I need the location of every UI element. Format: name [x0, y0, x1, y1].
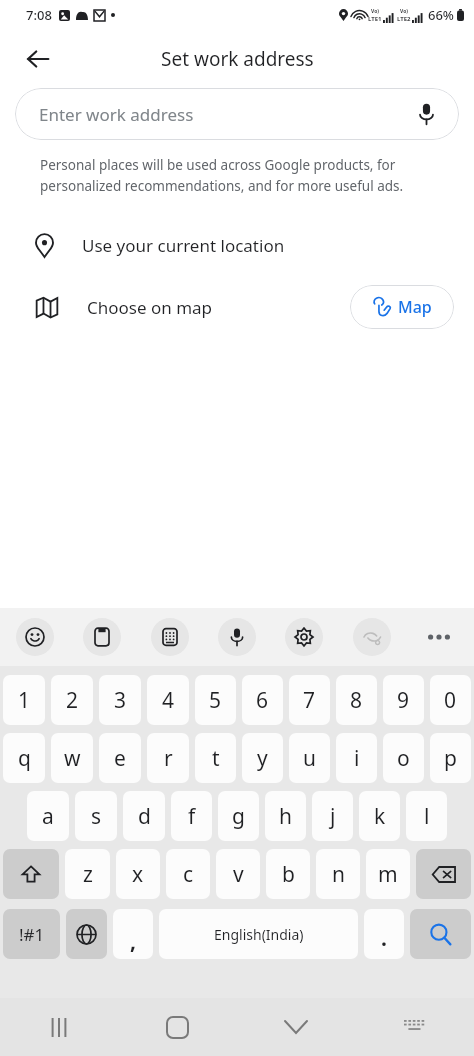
button[interactable]: p — [430, 733, 471, 783]
staticText: Vo) — [400, 8, 408, 15]
button[interactable]: More options — [420, 618, 458, 656]
button[interactable]: m — [366, 849, 410, 899]
staticText: i — [354, 744, 360, 773]
staticText: v — [233, 860, 244, 889]
button[interactable]: Settings — [285, 618, 323, 656]
button[interactable]: f — [171, 791, 212, 841]
staticText: m — [378, 860, 398, 889]
button[interactable]: 6 — [242, 675, 283, 725]
staticText: j — [330, 802, 336, 831]
button[interactable]: Translate — [353, 618, 391, 656]
button[interactable]: z — [65, 849, 110, 899]
staticText: r — [164, 744, 173, 773]
button[interactable]: a — [27, 791, 69, 841]
button[interactable]: e — [99, 733, 141, 783]
staticText: Personal places will be used across Goog… — [40, 156, 396, 174]
button[interactable]: 5 — [195, 675, 236, 725]
button[interactable]: j — [312, 791, 353, 841]
button[interactable]: Keyboard modes — [151, 618, 189, 656]
button[interactable]: !#1 — [3, 909, 60, 959]
staticText: Choose on map — [87, 296, 213, 319]
staticText: 7:08 — [26, 6, 52, 24]
staticText: LTE2 — [397, 15, 411, 23]
button[interactable]: s — [75, 791, 117, 841]
button[interactable]: t — [195, 733, 236, 783]
button[interactable]: i — [336, 733, 377, 783]
button[interactable]: l — [406, 791, 447, 841]
button[interactable]: , — [113, 909, 153, 959]
staticText: f — [188, 802, 196, 831]
staticText: 2 — [66, 686, 79, 715]
button[interactable]: 3 — [99, 675, 141, 725]
button[interactable]: h — [265, 791, 306, 841]
button[interactable]: Shift — [3, 849, 59, 899]
button[interactable]: o — [383, 733, 424, 783]
button[interactable]: 4 — [147, 675, 189, 725]
staticText: e — [114, 744, 126, 773]
staticText: 8 — [350, 686, 363, 715]
button[interactable]: Back — [16, 37, 60, 81]
button[interactable]: Change language — [66, 909, 107, 959]
staticText: w — [64, 744, 81, 773]
button[interactable]: k — [359, 791, 400, 841]
button[interactable]: Switch keyboard — [355, 998, 474, 1056]
staticText: 9 — [397, 686, 410, 715]
button[interactable]: Voice input — [218, 618, 256, 656]
button[interactable]: 7 — [289, 675, 330, 725]
button[interactable]: 2 — [51, 675, 93, 725]
button[interactable]: Enter work address — [15, 88, 459, 140]
button[interactable]: . — [364, 909, 404, 959]
button[interactable]: x — [116, 849, 160, 899]
staticText: 0 — [444, 686, 457, 715]
button[interactable]: w — [51, 733, 93, 783]
button[interactable]: v — [216, 849, 260, 899]
staticText: personalized recommendations, and for mo… — [40, 177, 404, 195]
staticText: Map — [398, 296, 432, 318]
button[interactable]: Clipboard — [83, 618, 121, 656]
staticText: u — [303, 744, 316, 773]
staticText: . — [381, 924, 387, 953]
staticText: d — [138, 802, 151, 831]
staticText: n — [332, 860, 345, 889]
button[interactable]: Recent apps — [0, 998, 118, 1056]
button[interactable]: r — [147, 733, 189, 783]
staticText: Vo) — [371, 8, 379, 15]
staticText: x — [132, 860, 144, 889]
staticText: Set work address — [161, 46, 314, 72]
staticText: p — [444, 744, 457, 773]
button[interactable]: Home — [118, 998, 236, 1056]
button[interactable]: Search — [410, 909, 471, 959]
staticText: q — [18, 744, 31, 773]
button[interactable]: y — [242, 733, 283, 783]
staticText: 6 — [256, 686, 269, 715]
button[interactable]: 9 — [383, 675, 424, 725]
button[interactable]: Voice search — [411, 99, 441, 129]
button[interactable]: g — [218, 791, 259, 841]
button[interactable]: 8 — [336, 675, 377, 725]
staticText: s — [91, 802, 102, 831]
staticText: Enter work address — [39, 103, 411, 126]
button[interactable]: u — [289, 733, 330, 783]
button[interactable]: Emoji — [16, 618, 54, 656]
staticText: c — [183, 860, 194, 889]
staticText: g — [232, 802, 245, 831]
button[interactable]: q — [3, 733, 45, 783]
button[interactable]: d — [123, 791, 165, 841]
button[interactable]: c — [166, 849, 210, 899]
staticText: , — [130, 927, 136, 956]
button[interactable]: Choose on map — [0, 275, 474, 339]
button[interactable]: b — [266, 849, 310, 899]
button[interactable]: English(India) — [159, 909, 358, 959]
button[interactable]: Map — [350, 285, 454, 329]
button[interactable]: Hide keyboard — [236, 998, 355, 1056]
staticText: l — [424, 802, 430, 831]
button[interactable]: n — [316, 849, 360, 899]
staticText: t — [212, 744, 220, 773]
staticText: k — [374, 802, 386, 831]
staticText: h — [279, 802, 292, 831]
staticText: z — [83, 860, 93, 889]
button[interactable]: Backspace — [416, 849, 471, 899]
button[interactable]: Use your current location — [0, 215, 474, 275]
button[interactable]: 1 — [3, 675, 45, 725]
button[interactable]: 0 — [430, 675, 471, 725]
